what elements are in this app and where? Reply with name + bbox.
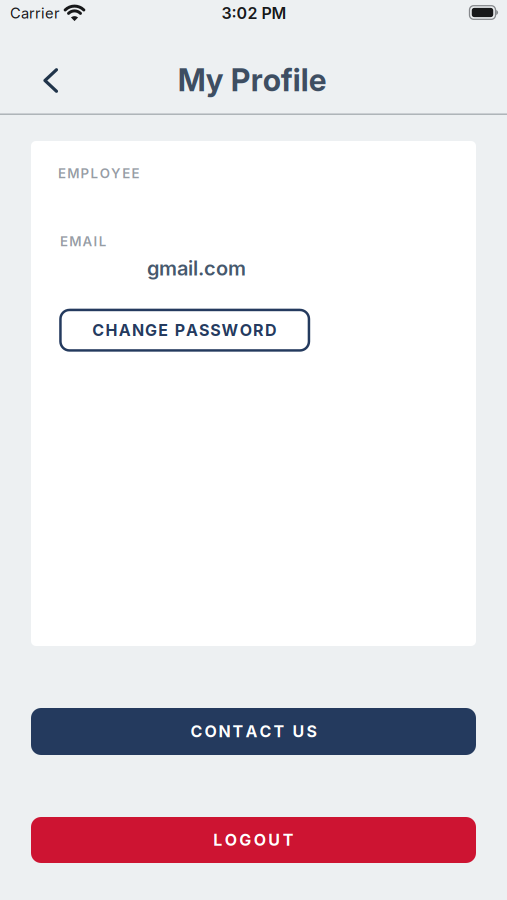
staticText: 3:02 PM: [221, 4, 286, 23]
staticText: M: [69, 233, 81, 249]
staticText: O: [204, 722, 216, 741]
staticText: T: [283, 831, 294, 849]
staticText: A: [82, 233, 92, 249]
staticText: N: [218, 722, 230, 741]
staticText: T: [232, 722, 243, 741]
staticText: O: [254, 831, 266, 849]
staticText: P: [80, 166, 89, 181]
staticText: U: [268, 831, 280, 849]
staticText: Y: [111, 166, 121, 181]
staticText: E: [131, 166, 139, 181]
staticText: A: [186, 321, 198, 340]
button[interactable]: L: [31, 817, 476, 863]
staticText: C: [190, 722, 202, 741]
button[interactable]: Back: [31, 60, 70, 101]
button[interactable]: C: [60, 310, 309, 350]
staticText: G: [239, 831, 251, 849]
staticText: D: [265, 321, 277, 340]
staticText: E: [158, 321, 168, 340]
staticText: N: [132, 321, 144, 340]
staticText: E: [58, 166, 66, 181]
staticText: L: [91, 166, 99, 181]
staticText: R: [253, 321, 264, 340]
staticText: My Profile: [178, 62, 327, 98]
staticText: U: [292, 722, 304, 741]
staticText: E: [60, 233, 68, 249]
staticText: G: [145, 321, 157, 340]
staticText: H: [105, 321, 117, 340]
button[interactable]: C: [31, 708, 476, 755]
staticText: O: [100, 166, 110, 181]
staticText: E: [122, 166, 130, 181]
staticText: C: [259, 722, 271, 741]
staticText: gmail.com: [147, 256, 246, 280]
staticText: O: [225, 831, 237, 849]
staticText: S: [210, 321, 220, 340]
staticText: I: [94, 233, 98, 249]
staticText: L: [99, 233, 107, 249]
staticText: S: [199, 321, 209, 340]
staticText: P: [175, 321, 185, 340]
staticText: L: [213, 831, 222, 849]
staticText: A: [245, 722, 257, 741]
staticText: W: [221, 321, 238, 340]
staticText: O: [240, 321, 252, 340]
staticText: M: [67, 166, 79, 181]
staticText: A: [119, 321, 131, 340]
staticText: C: [92, 321, 104, 340]
staticText: T: [273, 722, 284, 741]
staticText: Carrier: [10, 4, 60, 22]
staticText: S: [306, 722, 316, 741]
